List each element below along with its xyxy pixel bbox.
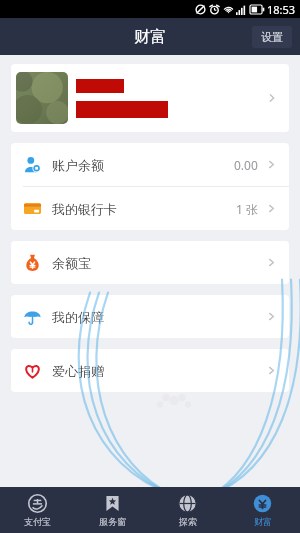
staticText: 账户余额 bbox=[52, 157, 104, 173]
staticText: 爱心捐赠 bbox=[52, 363, 104, 379]
staticText: 我的银行卡 bbox=[52, 201, 117, 217]
button[interactable]: 支付宝 bbox=[0, 487, 75, 533]
button[interactable]: 我的银行卡 bbox=[11, 187, 289, 230]
staticText: 1 张 bbox=[236, 201, 258, 217]
staticText: 18:53 bbox=[267, 2, 296, 17]
button[interactable]: 爱心捐赠 bbox=[11, 349, 289, 392]
staticText: 支付宝 bbox=[24, 516, 51, 527]
staticText: 我的保障 bbox=[52, 309, 104, 325]
staticText: 0.00 bbox=[234, 157, 258, 173]
staticText: 探索 bbox=[179, 516, 197, 527]
button[interactable]: 探索 bbox=[150, 487, 225, 533]
button[interactable] bbox=[11, 64, 289, 132]
button[interactable]: 余额宝 bbox=[11, 241, 289, 284]
button[interactable]: 账户余额 bbox=[11, 143, 289, 186]
button[interactable]: 设置 bbox=[252, 26, 292, 48]
button[interactable]: 服务窗 bbox=[75, 487, 150, 533]
staticText: 设置 bbox=[261, 30, 283, 44]
button[interactable]: 我的保障 bbox=[11, 295, 289, 338]
button[interactable]: 财富 bbox=[225, 487, 300, 533]
staticText: 财富 bbox=[134, 27, 166, 47]
staticText: 财富 bbox=[254, 516, 272, 527]
staticText: 余额宝 bbox=[52, 255, 91, 271]
staticText: 服务窗 bbox=[99, 516, 126, 527]
